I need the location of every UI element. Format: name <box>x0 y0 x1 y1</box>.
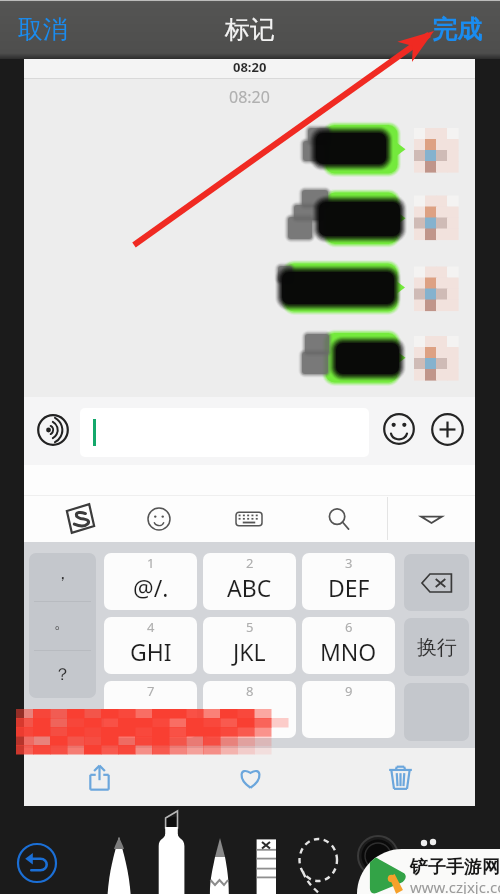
staticText: @/. <box>133 572 169 603</box>
button[interactable]: ？ <box>29 651 96 698</box>
button[interactable]: 。 <box>29 602 96 650</box>
staticText: 。 <box>54 612 71 633</box>
button[interactable]: 6 <box>302 617 395 674</box>
staticText: MNO <box>320 636 377 667</box>
button[interactable]: Voice input <box>35 412 70 447</box>
staticText: ABC <box>227 572 272 603</box>
staticText: DEF <box>328 572 370 603</box>
button[interactable]: More options <box>430 412 464 446</box>
staticText: 铲子手游网 <box>410 856 500 879</box>
staticText: 1 <box>147 554 155 572</box>
button[interactable]: Favorite <box>175 748 325 806</box>
staticText: 4 <box>147 618 155 636</box>
staticText: 5 <box>246 618 254 636</box>
button[interactable]: 2 <box>203 553 296 610</box>
button[interactable]: Share <box>24 748 175 806</box>
button[interactable]: Backspace <box>404 554 469 611</box>
button[interactable]: Hide keyboard <box>401 495 461 542</box>
button[interactable]: Undo <box>16 842 58 884</box>
button[interactable]: Colour <box>332 806 390 894</box>
staticText: 08:20 <box>233 58 267 76</box>
staticText: 换行 <box>417 635 457 660</box>
staticText: ， <box>54 563 71 584</box>
button[interactable]: Pen <box>100 806 146 894</box>
button[interactable]: 3 <box>302 553 395 610</box>
button[interactable]: Lasso <box>274 806 332 894</box>
button[interactable]: Search <box>310 495 368 542</box>
staticText: 6 <box>345 618 353 636</box>
staticText: JKL <box>233 636 266 667</box>
button[interactable]: 7 <box>104 681 197 738</box>
staticText: 08:20 <box>229 86 270 108</box>
button[interactable]: Eraser <box>232 806 274 894</box>
button[interactable]: 1 <box>104 553 197 610</box>
button[interactable]: Keyboard <box>219 495 279 542</box>
button[interactable]: Delete <box>325 748 475 806</box>
staticText: www.czjxjc.com <box>410 877 500 894</box>
button[interactable]: 9 <box>302 681 395 738</box>
button[interactable]: ， <box>29 553 96 601</box>
staticText: ？ <box>54 664 71 685</box>
staticText: 7 <box>147 682 155 700</box>
staticText: 标记 <box>225 14 275 45</box>
button[interactable]: Highlighter <box>146 806 190 894</box>
staticText: 9 <box>345 682 353 700</box>
button[interactable]: 完成 <box>424 6 490 53</box>
button[interactable] <box>80 408 369 457</box>
staticText: 取消 <box>18 14 68 45</box>
button[interactable]: 4 <box>104 617 197 674</box>
button[interactable]: 换行 <box>404 618 469 676</box>
staticText: GHI <box>130 636 172 667</box>
button[interactable]: 8 <box>203 681 296 738</box>
staticText: 8 <box>246 682 254 700</box>
button[interactable]: Emoji <box>129 495 189 542</box>
button[interactable]: Emoji <box>382 412 416 446</box>
button[interactable]: Input method <box>50 495 110 542</box>
staticText: 完成 <box>432 14 482 45</box>
staticText: 2 <box>246 554 254 572</box>
staticText: 3 <box>345 554 353 572</box>
button[interactable]: Pencil <box>190 806 232 894</box>
button[interactable]: 5 <box>203 617 296 674</box>
button[interactable]: 取消 <box>10 6 76 53</box>
